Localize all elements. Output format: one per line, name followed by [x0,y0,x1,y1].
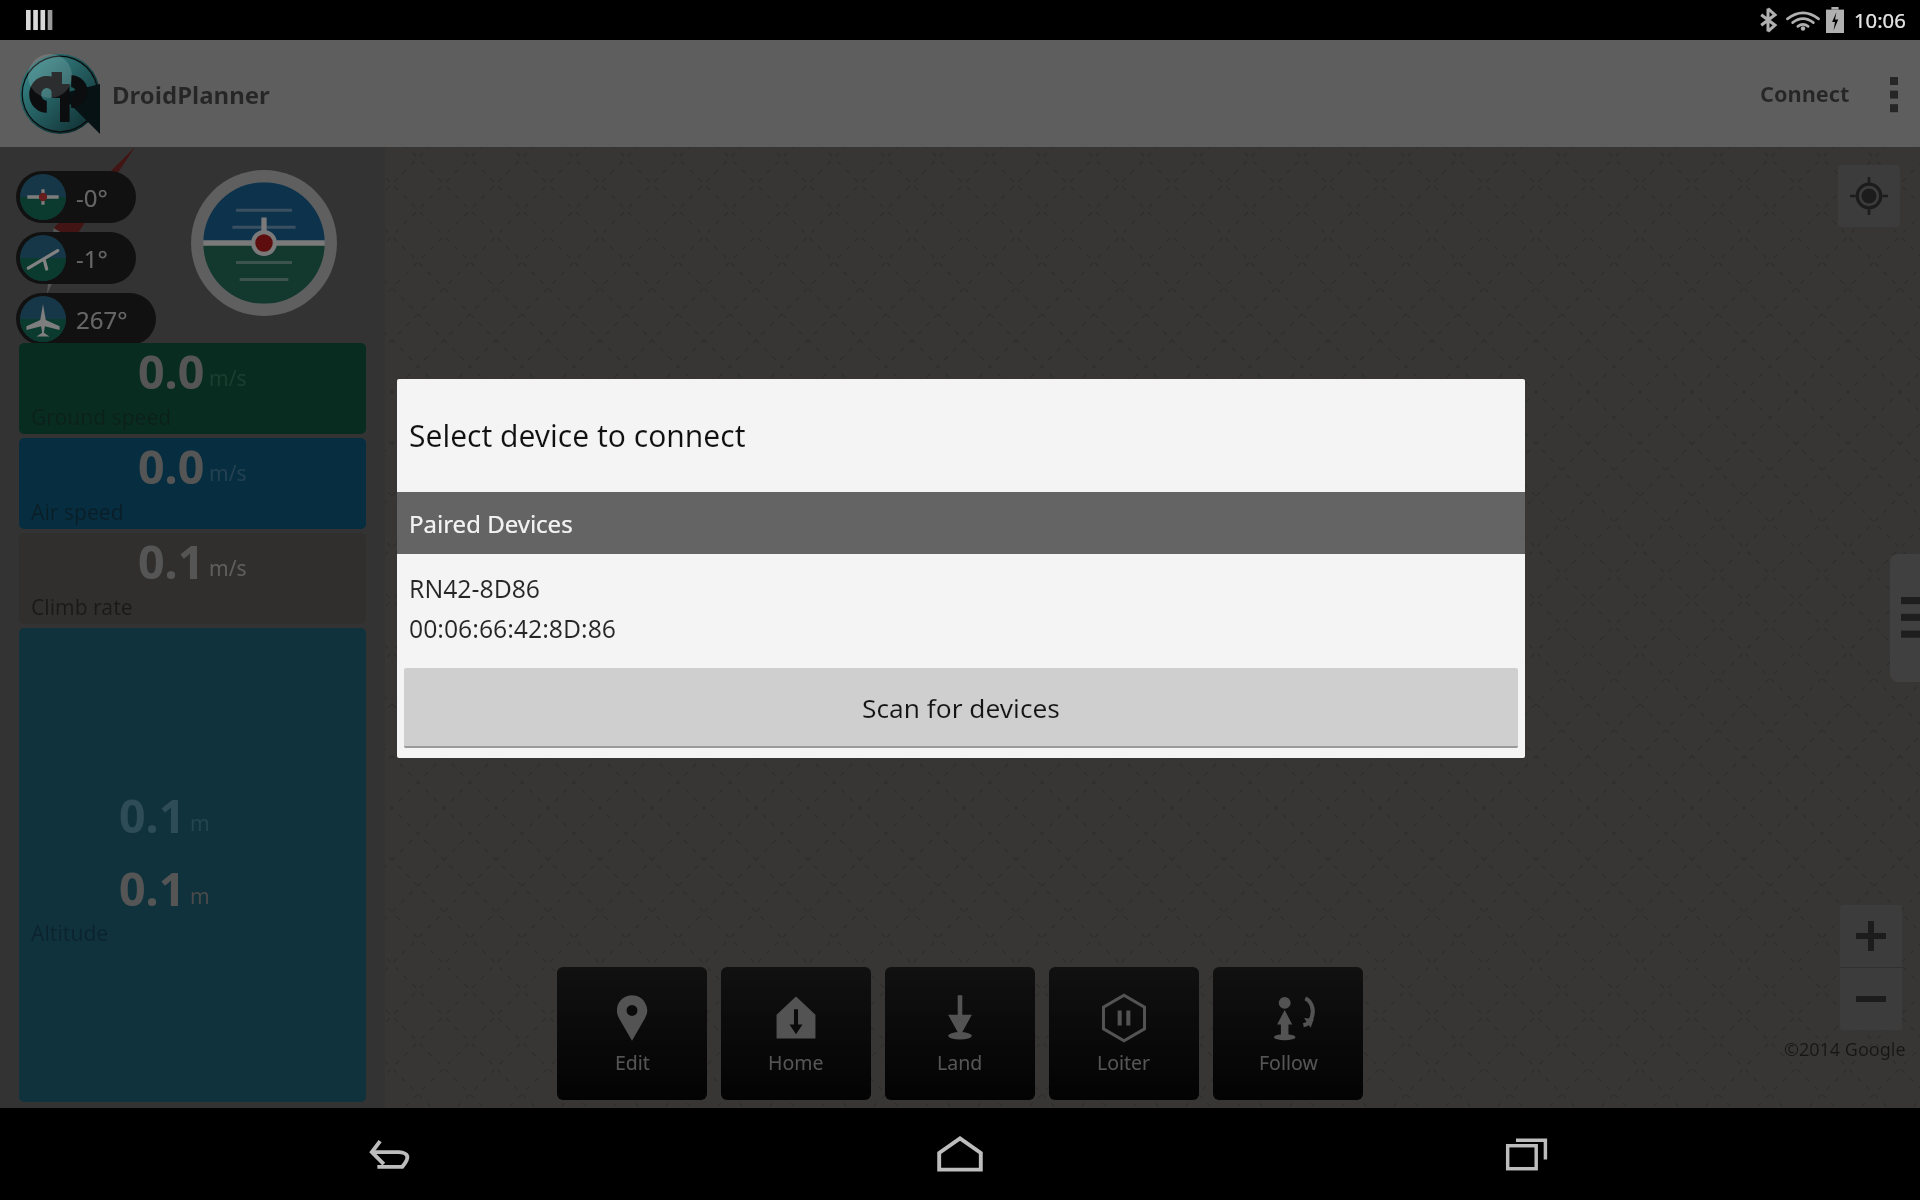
staticText: Follow [1259,1049,1318,1076]
button[interactable]: 267° [16,293,156,345]
staticText: Altitude [31,919,109,948]
button[interactable]: Back [338,1108,448,1200]
staticText: Select device to connect [409,415,746,456]
staticText: Connect [1760,79,1850,109]
staticText: 0.0 [138,438,205,497]
button[interactable]: Edit [557,967,707,1100]
button[interactable]: My location [1838,165,1900,227]
staticText: ©2014 Google [1784,1037,1906,1062]
staticText: Climb rate [31,593,133,622]
button[interactable]: Home [721,967,871,1100]
button[interactable]: -0° [16,171,136,223]
staticText: m/s [209,364,247,393]
button[interactable]: 0.0 [19,343,366,434]
staticText: m/s [209,459,247,488]
staticText: DroidPlanner [112,78,270,111]
staticText: m/s [209,554,247,583]
button[interactable]: Land [885,967,1035,1100]
staticText: 0.1 [119,856,186,919]
button[interactable]: Zoom out [1840,968,1902,1030]
staticText: 0.1 [138,533,205,592]
staticText: Edit [615,1049,650,1076]
button[interactable]: More options [1868,51,1920,137]
staticText: Paired Devices [409,507,573,540]
staticText: Land [937,1049,983,1076]
staticText: 0.0 [138,343,205,402]
staticText: RN42-8D86 [409,572,541,606]
button[interactable]: Home [905,1108,1015,1200]
button[interactable]: Scan for devices [404,668,1518,748]
staticText: 0.1 [119,783,186,846]
button[interactable]: Connect [1742,53,1868,135]
staticText: Air speed [31,498,124,527]
staticText: -1° [76,242,108,275]
staticText: m [190,809,210,838]
staticText: m [190,882,210,911]
staticText: Home [768,1049,824,1076]
button[interactable]: Recent apps [1472,1108,1582,1200]
button[interactable]: -1° [16,232,136,284]
button[interactable]: Zoom in [1840,905,1902,967]
staticText: -0° [76,181,108,214]
button[interactable]: 0.0 [19,438,366,529]
button[interactable]: 0.1 [19,533,366,624]
button[interactable]: Follow [1213,967,1363,1100]
staticText: Ground speed [31,403,172,432]
staticText: Scan for devices [862,690,1060,726]
staticText: Loiter [1097,1049,1151,1076]
button[interactable]: Loiter [1049,967,1199,1100]
button[interactable]: 0.1 [19,628,366,1102]
staticText: 00:06:66:42:8D:86 [409,612,616,646]
button[interactable]: RN42-8D86 [397,554,1525,666]
staticText: 10:06 [1854,6,1906,34]
staticText: 267° [76,303,128,336]
button[interactable]: Open drawer [1890,554,1920,682]
